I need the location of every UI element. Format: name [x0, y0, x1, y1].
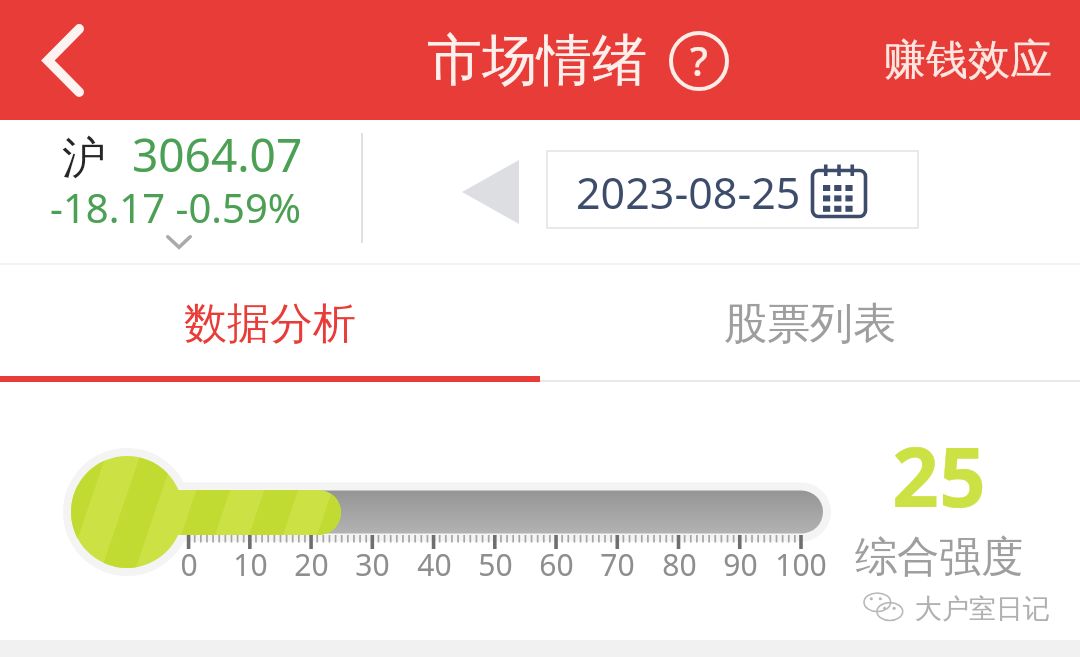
staticText: 50: [478, 544, 513, 585]
staticText: 25: [892, 419, 986, 531]
staticText: -18.17 -0.59%: [50, 180, 301, 234]
staticText: 60: [539, 544, 574, 585]
staticText: 2023-08-25: [576, 163, 801, 222]
staticText: 90: [723, 544, 758, 585]
staticText: ?: [690, 33, 708, 87]
staticText: 股票列表: [724, 297, 896, 351]
staticText: 0: [180, 544, 198, 585]
button[interactable]: Previous day: [462, 160, 519, 224]
button[interactable]: 沪: [40, 120, 320, 255]
staticText: 市场情绪: [427, 26, 647, 95]
staticText: 10: [233, 544, 268, 585]
staticText: 100: [775, 544, 827, 585]
staticText: 赚钱效应: [884, 34, 1052, 87]
staticText: 大户室日记: [915, 592, 1050, 626]
button[interactable]: 数据分析: [0, 265, 540, 383]
staticText: 70: [600, 544, 635, 585]
button[interactable]: Back: [16, 13, 110, 107]
staticText: 数据分析: [184, 297, 356, 351]
button[interactable]: 2023-08-25: [547, 151, 918, 228]
button[interactable]: 赚钱效应: [864, 0, 1072, 120]
staticText: 20: [294, 544, 329, 585]
staticText: 80: [662, 544, 697, 585]
staticText: 40: [417, 544, 452, 585]
staticText: 3064.07: [132, 123, 303, 186]
staticText: 30: [355, 544, 390, 585]
staticText: 沪: [62, 131, 106, 186]
button[interactable]: Help: [669, 31, 729, 91]
staticText: 综合强度: [855, 531, 1023, 584]
button[interactable]: 股票列表: [540, 265, 1080, 383]
